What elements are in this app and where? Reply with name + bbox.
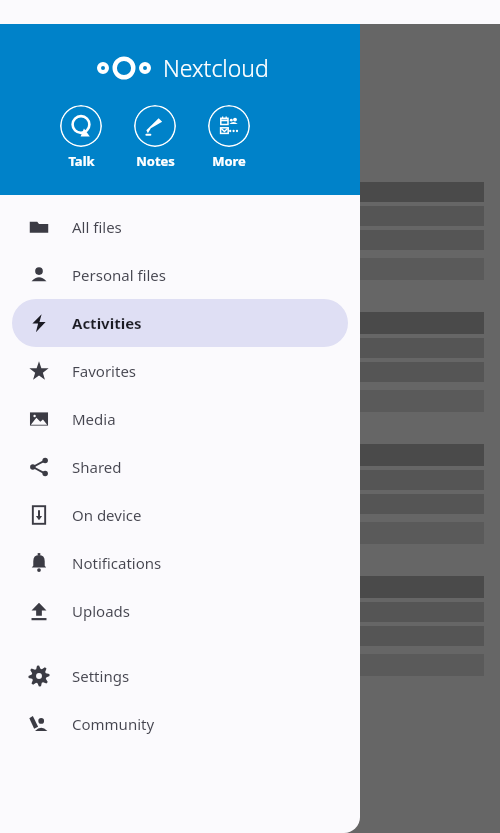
button[interactable]: Talk bbox=[60, 105, 102, 170]
button[interactable]: Notifications bbox=[12, 539, 348, 587]
staticText: All files bbox=[72, 217, 122, 237]
staticText: Settings bbox=[72, 666, 130, 686]
staticText: Nextcloud bbox=[163, 52, 269, 83]
staticText: On device bbox=[72, 505, 142, 525]
button[interactable]: Favorites bbox=[12, 347, 348, 395]
staticText: Notes bbox=[136, 152, 175, 170]
button[interactable]: Personal files bbox=[12, 251, 348, 299]
staticText: Notifications bbox=[72, 553, 162, 573]
button[interactable]: More bbox=[208, 105, 250, 170]
button[interactable]: Media bbox=[12, 395, 348, 443]
button[interactable]: Shared bbox=[12, 443, 348, 491]
button[interactable]: All files bbox=[12, 203, 348, 251]
button[interactable]: Settings bbox=[12, 652, 348, 700]
staticText: Favorites bbox=[72, 361, 137, 381]
staticText: Media bbox=[72, 409, 116, 429]
button[interactable]: Uploads bbox=[12, 587, 348, 635]
staticText: Shared bbox=[72, 457, 122, 477]
button[interactable]: Activities bbox=[12, 299, 348, 347]
staticText: More bbox=[212, 152, 246, 170]
staticText: Activities bbox=[72, 313, 142, 333]
staticText: Community bbox=[72, 714, 155, 734]
button[interactable]: Community bbox=[12, 700, 348, 748]
staticText: Personal files bbox=[72, 265, 166, 285]
staticText: Uploads bbox=[72, 601, 130, 621]
button[interactable]: On device bbox=[12, 491, 348, 539]
staticText: Talk bbox=[68, 152, 95, 170]
button[interactable]: Notes bbox=[134, 105, 176, 170]
